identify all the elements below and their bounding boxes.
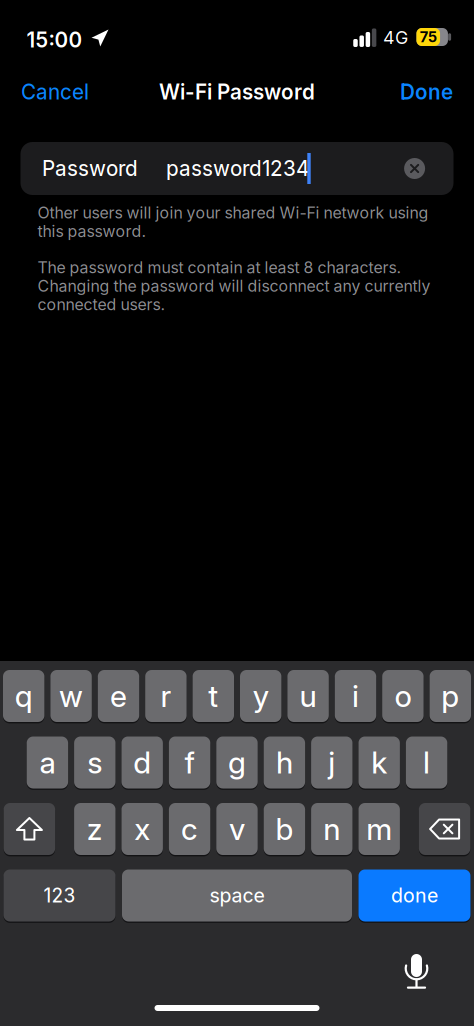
staticText: space [209, 884, 264, 907]
staticText: p [441, 678, 459, 714]
staticText: Done [400, 80, 453, 104]
button[interactable]: done [358, 869, 470, 921]
staticText: 15:00 [26, 28, 82, 52]
staticText: j [328, 745, 335, 780]
button[interactable]: a [27, 736, 68, 788]
button[interactable]: Dictation [404, 952, 428, 992]
staticText: b [275, 811, 293, 847]
button[interactable]: Clear text [404, 158, 425, 179]
button[interactable]: i [335, 670, 376, 722]
staticText: v [229, 811, 245, 847]
button[interactable]: e [98, 670, 139, 722]
staticText: 75 [420, 28, 437, 46]
button[interactable]: Cancel [21, 72, 111, 112]
button[interactable]: b [264, 803, 305, 855]
staticText: i [352, 678, 359, 714]
button[interactable]: q [3, 670, 44, 722]
staticText: The password must contain at least 8 cha… [37, 258, 430, 314]
button[interactable]: y [240, 670, 281, 722]
staticText: z [87, 811, 103, 847]
staticText: m [366, 811, 392, 847]
button[interactable]: r [145, 670, 187, 722]
button[interactable]: Shift [4, 803, 55, 855]
button[interactable]: Password [20, 142, 453, 195]
staticText: x [134, 811, 150, 847]
button[interactable]: space [122, 869, 352, 921]
staticText: u [300, 678, 317, 714]
button[interactable]: l [406, 736, 447, 788]
staticText: w [59, 678, 83, 714]
staticText: k [371, 745, 387, 780]
staticText: Wi-Fi Password [159, 80, 315, 104]
button[interactable]: Delete [419, 803, 470, 855]
staticText: e [110, 678, 127, 714]
button[interactable]: m [358, 803, 400, 855]
button[interactable]: z [74, 803, 115, 855]
button[interactable]: w [50, 670, 92, 722]
staticText: password1234 [166, 156, 309, 181]
button[interactable]: f [169, 736, 210, 788]
staticText: a [39, 745, 55, 780]
button[interactable]: u [287, 670, 329, 722]
button[interactable]: Done [363, 72, 453, 112]
button[interactable]: o [382, 670, 424, 722]
button[interactable]: g [216, 736, 258, 788]
staticText: l [423, 745, 430, 780]
staticText: y [253, 678, 269, 714]
staticText: done [391, 884, 438, 907]
button[interactable]: x [121, 803, 163, 855]
staticText: s [87, 745, 102, 780]
staticText: Cancel [21, 80, 89, 104]
staticText: f [185, 745, 195, 780]
button[interactable]: k [358, 736, 400, 788]
button[interactable]: s [74, 736, 115, 788]
staticText: h [276, 745, 293, 780]
button[interactable]: h [264, 736, 305, 788]
button[interactable]: t [193, 670, 234, 722]
staticText: d [133, 745, 151, 780]
staticText: o [394, 678, 411, 714]
button[interactable]: 123 [3, 869, 115, 921]
button[interactable]: j [311, 736, 352, 788]
button[interactable]: p [430, 670, 471, 722]
button[interactable]: n [311, 803, 352, 855]
button[interactable]: d [121, 736, 163, 788]
staticText: Other users will join your shared Wi-Fi … [37, 204, 428, 240]
button[interactable]: c [169, 803, 210, 855]
staticText: q [15, 678, 33, 714]
staticText: g [228, 745, 246, 780]
button[interactable]: v [216, 803, 258, 855]
staticText: 123 [43, 884, 75, 907]
staticText: t [208, 678, 218, 714]
staticText: 4G [383, 27, 408, 48]
staticText: Password [42, 156, 138, 181]
staticText: c [181, 811, 198, 847]
staticText: n [323, 811, 340, 847]
staticText: r [160, 678, 171, 714]
